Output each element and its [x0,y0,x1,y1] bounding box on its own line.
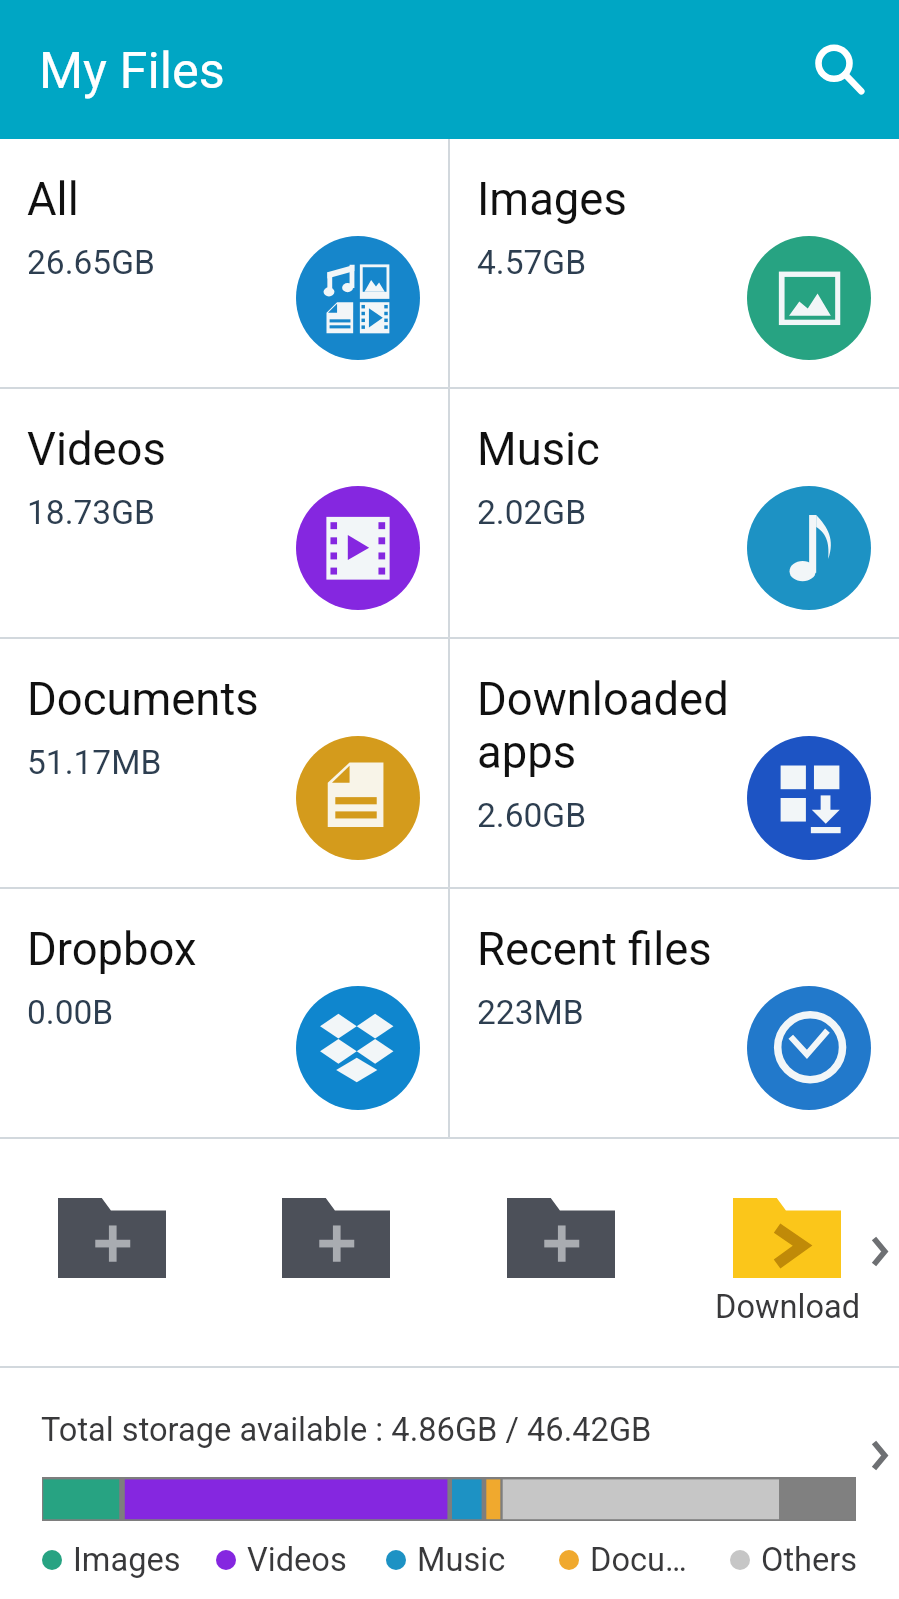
button[interactable]: More folders [869,1234,899,1266]
button[interactable]: Images [450,139,899,387]
staticText: Dropbox [27,923,197,976]
staticText: 18.73GB [27,493,155,532]
staticText: 2.02GB [477,493,587,532]
staticText: Videos [247,1541,347,1579]
staticText: Videos [27,423,166,476]
button[interactable]: Create folder [58,1198,166,1278]
button[interactable]: Create folder [507,1198,615,1278]
staticText: Music [417,1541,506,1579]
button[interactable]: Recent files [450,889,899,1137]
staticText: 2.60GB [477,796,587,835]
staticText: 26.65GB [27,243,155,282]
staticText: Downloaded apps [477,673,747,779]
button[interactable]: Music [450,389,899,637]
staticText: 51.17MB [27,743,162,782]
button[interactable]: Documents [0,639,448,887]
staticText: Total storage available : 4.86GB / 46.42… [41,1411,652,1449]
staticText: Images [73,1541,181,1579]
button[interactable]: Videos [0,389,448,637]
staticText: Images [477,173,627,226]
staticText: 223MB [477,993,584,1032]
button[interactable]: Search [798,27,898,127]
staticText: Recent files [477,923,712,976]
button[interactable]: All [0,139,448,387]
staticText: All [27,173,79,226]
button[interactable]: Downloaded apps [450,639,899,887]
staticText: Docu… [590,1541,687,1579]
staticText: Download [715,1288,861,1326]
staticText: Music [477,423,600,476]
button[interactable]: Download folder [733,1198,841,1278]
staticText: Documents [27,673,259,726]
staticText: My Files [39,41,225,100]
staticText: 0.00B [27,993,114,1032]
button[interactable]: Dropbox [0,889,448,1137]
staticText: Others [761,1541,858,1579]
staticText: 4.57GB [477,243,587,282]
button[interactable]: Create folder [282,1198,390,1278]
button[interactable]: Total storage available : 4.86GB / 46.42… [0,1368,899,1599]
